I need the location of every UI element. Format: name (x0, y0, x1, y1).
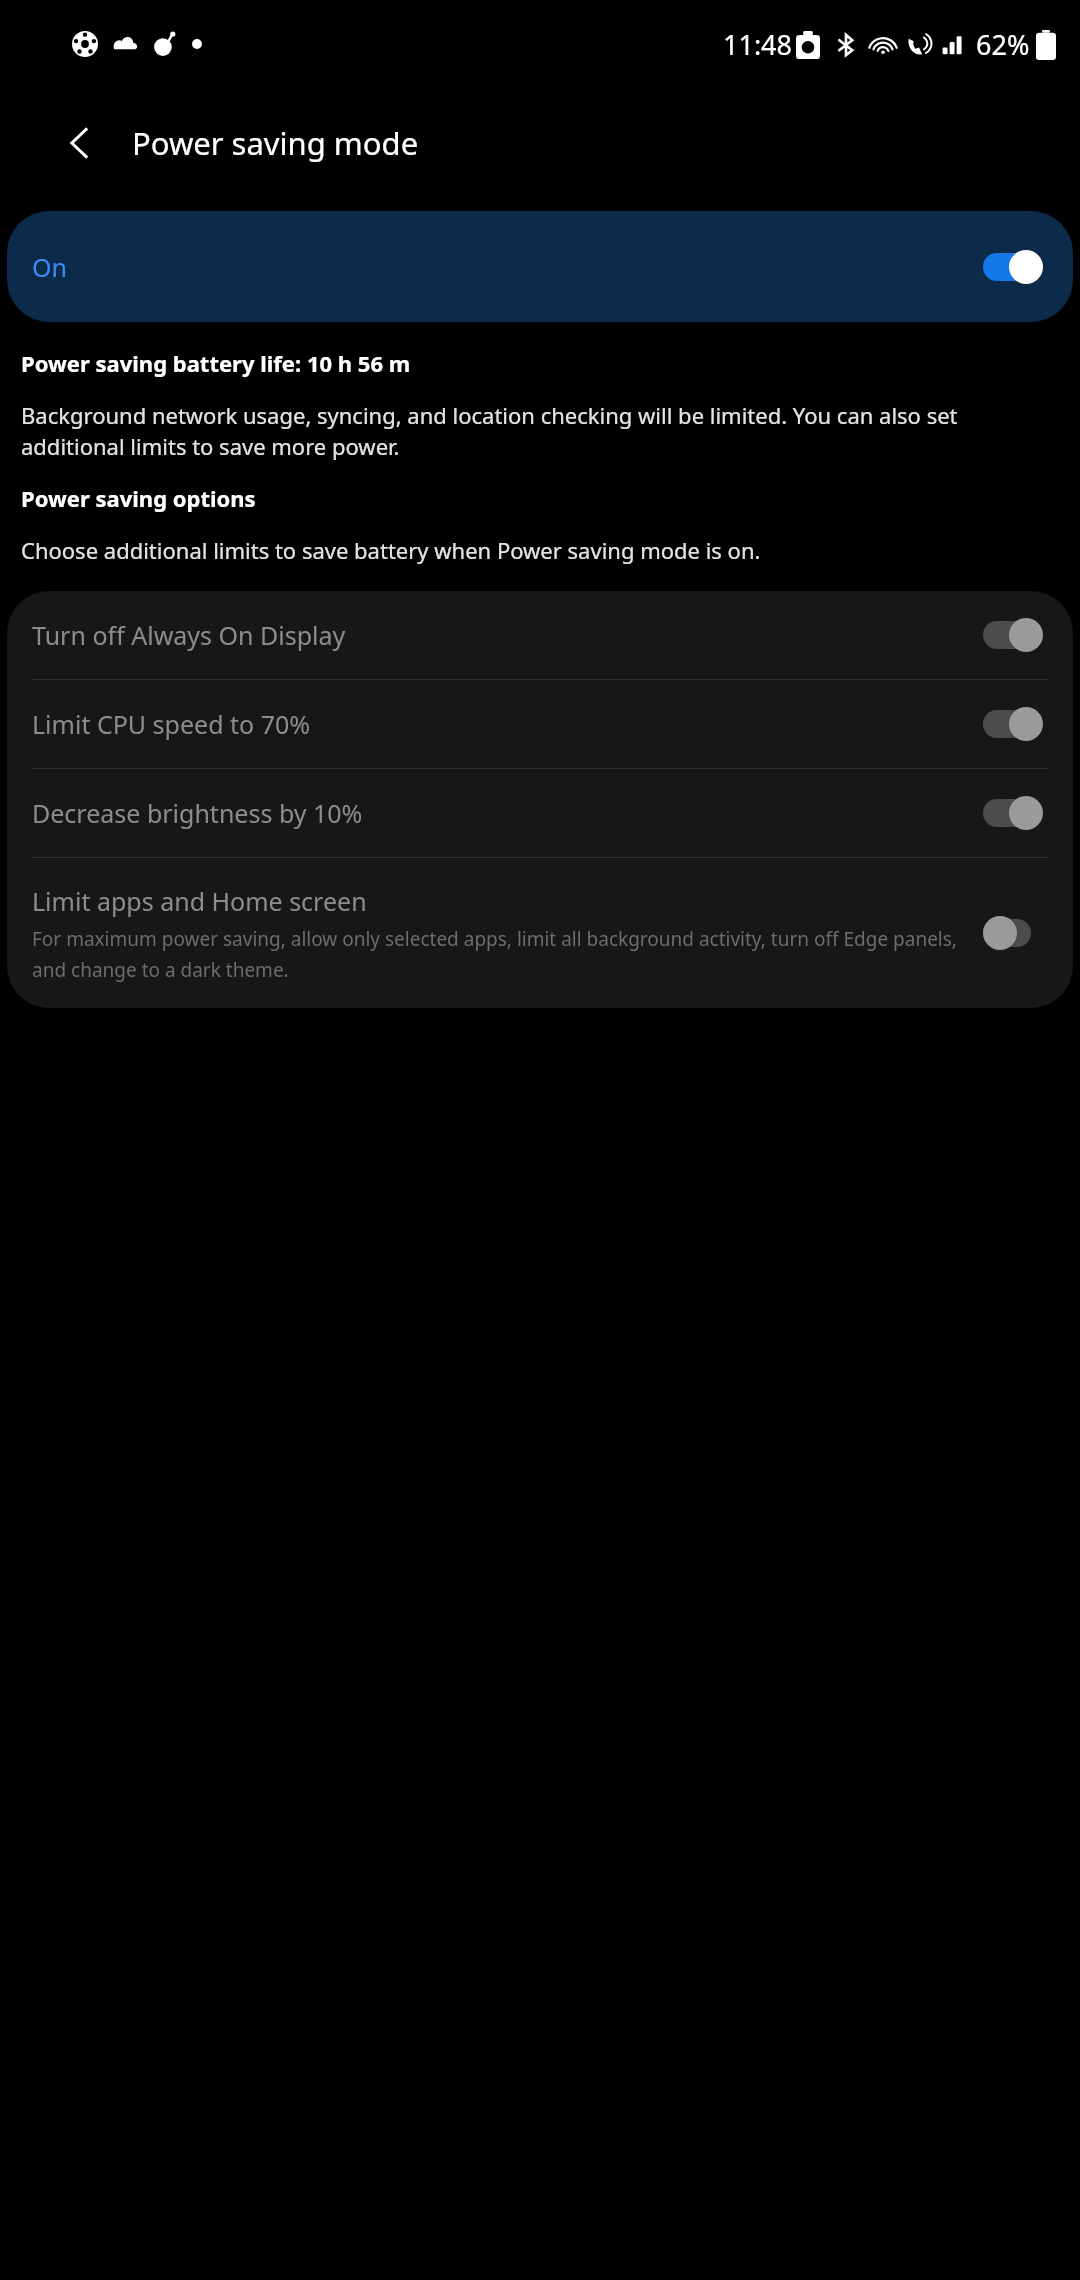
staticText: Decrease brightness by 10% (32, 796, 363, 830)
staticText: Turn off Always On Display (32, 618, 346, 652)
staticText: On (32, 250, 67, 284)
staticText: Background network usage, syncing, and l… (21, 400, 1059, 462)
staticText: Limit apps and Home screen (32, 884, 367, 918)
staticText: Choose additional limits to save battery… (21, 535, 761, 565)
staticText: Power saving battery life: 10 h 56 m (21, 348, 411, 378)
button[interactable]: On (7, 211, 1073, 322)
button[interactable]: Limit apps and Home screen (7, 858, 1073, 1008)
staticText: Power saving mode (132, 122, 419, 164)
button[interactable]: Turn off Always On Display (7, 591, 1073, 679)
button[interactable]: Limit CPU speed to 70% (7, 680, 1073, 768)
staticText: Limit CPU speed to 70% (32, 707, 311, 741)
staticText: For maximum power saving, allow only sel… (32, 926, 967, 982)
button[interactable]: Decrease brightness by 10% (7, 769, 1073, 857)
staticText: 11:48 (723, 26, 793, 63)
staticText: 62% (976, 26, 1030, 63)
staticText: Power saving options (21, 483, 256, 513)
button[interactable]: Back (52, 115, 108, 171)
